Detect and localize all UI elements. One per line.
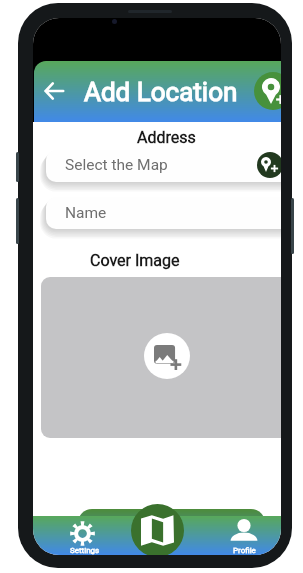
button[interactable]: Add cover image	[41, 277, 281, 438]
staticText: Select the Map	[65, 156, 168, 174]
staticText: Address	[137, 128, 196, 147]
staticText: Add Location	[84, 77, 238, 107]
staticText: Cover Image	[90, 251, 180, 270]
button[interactable]: Back	[44, 81, 64, 101]
button[interactable]: Open map	[254, 72, 281, 110]
staticText: Profile	[233, 546, 256, 555]
button[interactable]: Add location pin	[257, 152, 281, 178]
button[interactable]	[224, 518, 264, 554]
staticText: Settings	[70, 546, 100, 555]
button[interactable]	[46, 197, 281, 229]
button[interactable]: Pick image	[144, 333, 190, 379]
button[interactable]	[64, 518, 104, 554]
button[interactable]: Map	[131, 504, 184, 555]
staticText: Name	[65, 204, 107, 222]
button[interactable]	[46, 150, 281, 182]
